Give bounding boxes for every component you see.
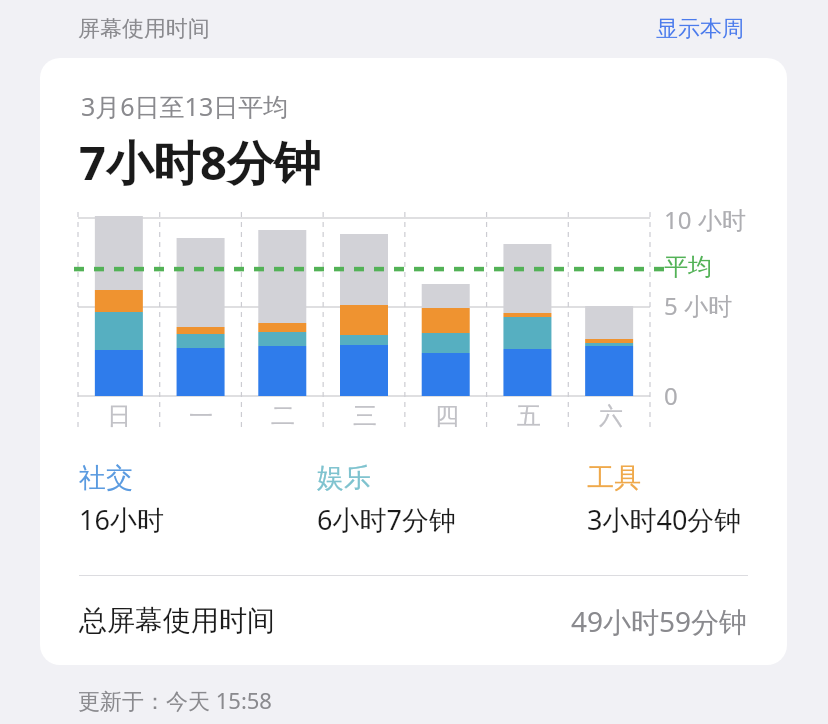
staticText: 娱乐 xyxy=(317,461,371,495)
staticText: 四 xyxy=(435,401,459,431)
staticText: 社交 xyxy=(79,461,133,495)
button[interactable]: 3月6日至13日平均 xyxy=(40,58,787,665)
button[interactable]: 总屏幕使用时间 xyxy=(40,576,787,665)
button[interactable]: 社交 xyxy=(79,461,317,538)
staticText: 一 xyxy=(189,401,213,431)
staticText: 六 xyxy=(599,401,623,431)
staticText: 显示本周 xyxy=(656,15,744,43)
staticText: 平均 xyxy=(664,252,712,282)
staticText: 3小时40分钟 xyxy=(587,501,742,538)
button[interactable]: 工具 xyxy=(587,461,787,538)
staticText: 0 xyxy=(664,379,678,412)
staticText: 7小时8分钟 xyxy=(79,130,321,194)
staticText: 五 xyxy=(517,401,541,431)
staticText: 10 小时 xyxy=(664,203,746,236)
staticText: 更新于：今天 15:58 xyxy=(78,685,272,715)
button[interactable]: 显示本周 xyxy=(650,11,750,47)
staticText: 二 xyxy=(271,401,295,431)
staticText: 3月6日至13日平均 xyxy=(81,89,289,123)
staticText: 5 小时 xyxy=(664,289,732,322)
staticText: 日 xyxy=(107,401,131,431)
staticText: 三 xyxy=(353,401,377,431)
button[interactable]: 娱乐 xyxy=(317,461,587,538)
staticText: 49小时59分钟 xyxy=(571,602,748,640)
staticText: 工具 xyxy=(587,461,641,495)
staticText: 6小时7分钟 xyxy=(317,501,456,538)
staticText: 16小时 xyxy=(79,501,164,538)
staticText: 屏幕使用时间 xyxy=(78,15,210,43)
staticText: 总屏幕使用时间 xyxy=(79,603,275,638)
